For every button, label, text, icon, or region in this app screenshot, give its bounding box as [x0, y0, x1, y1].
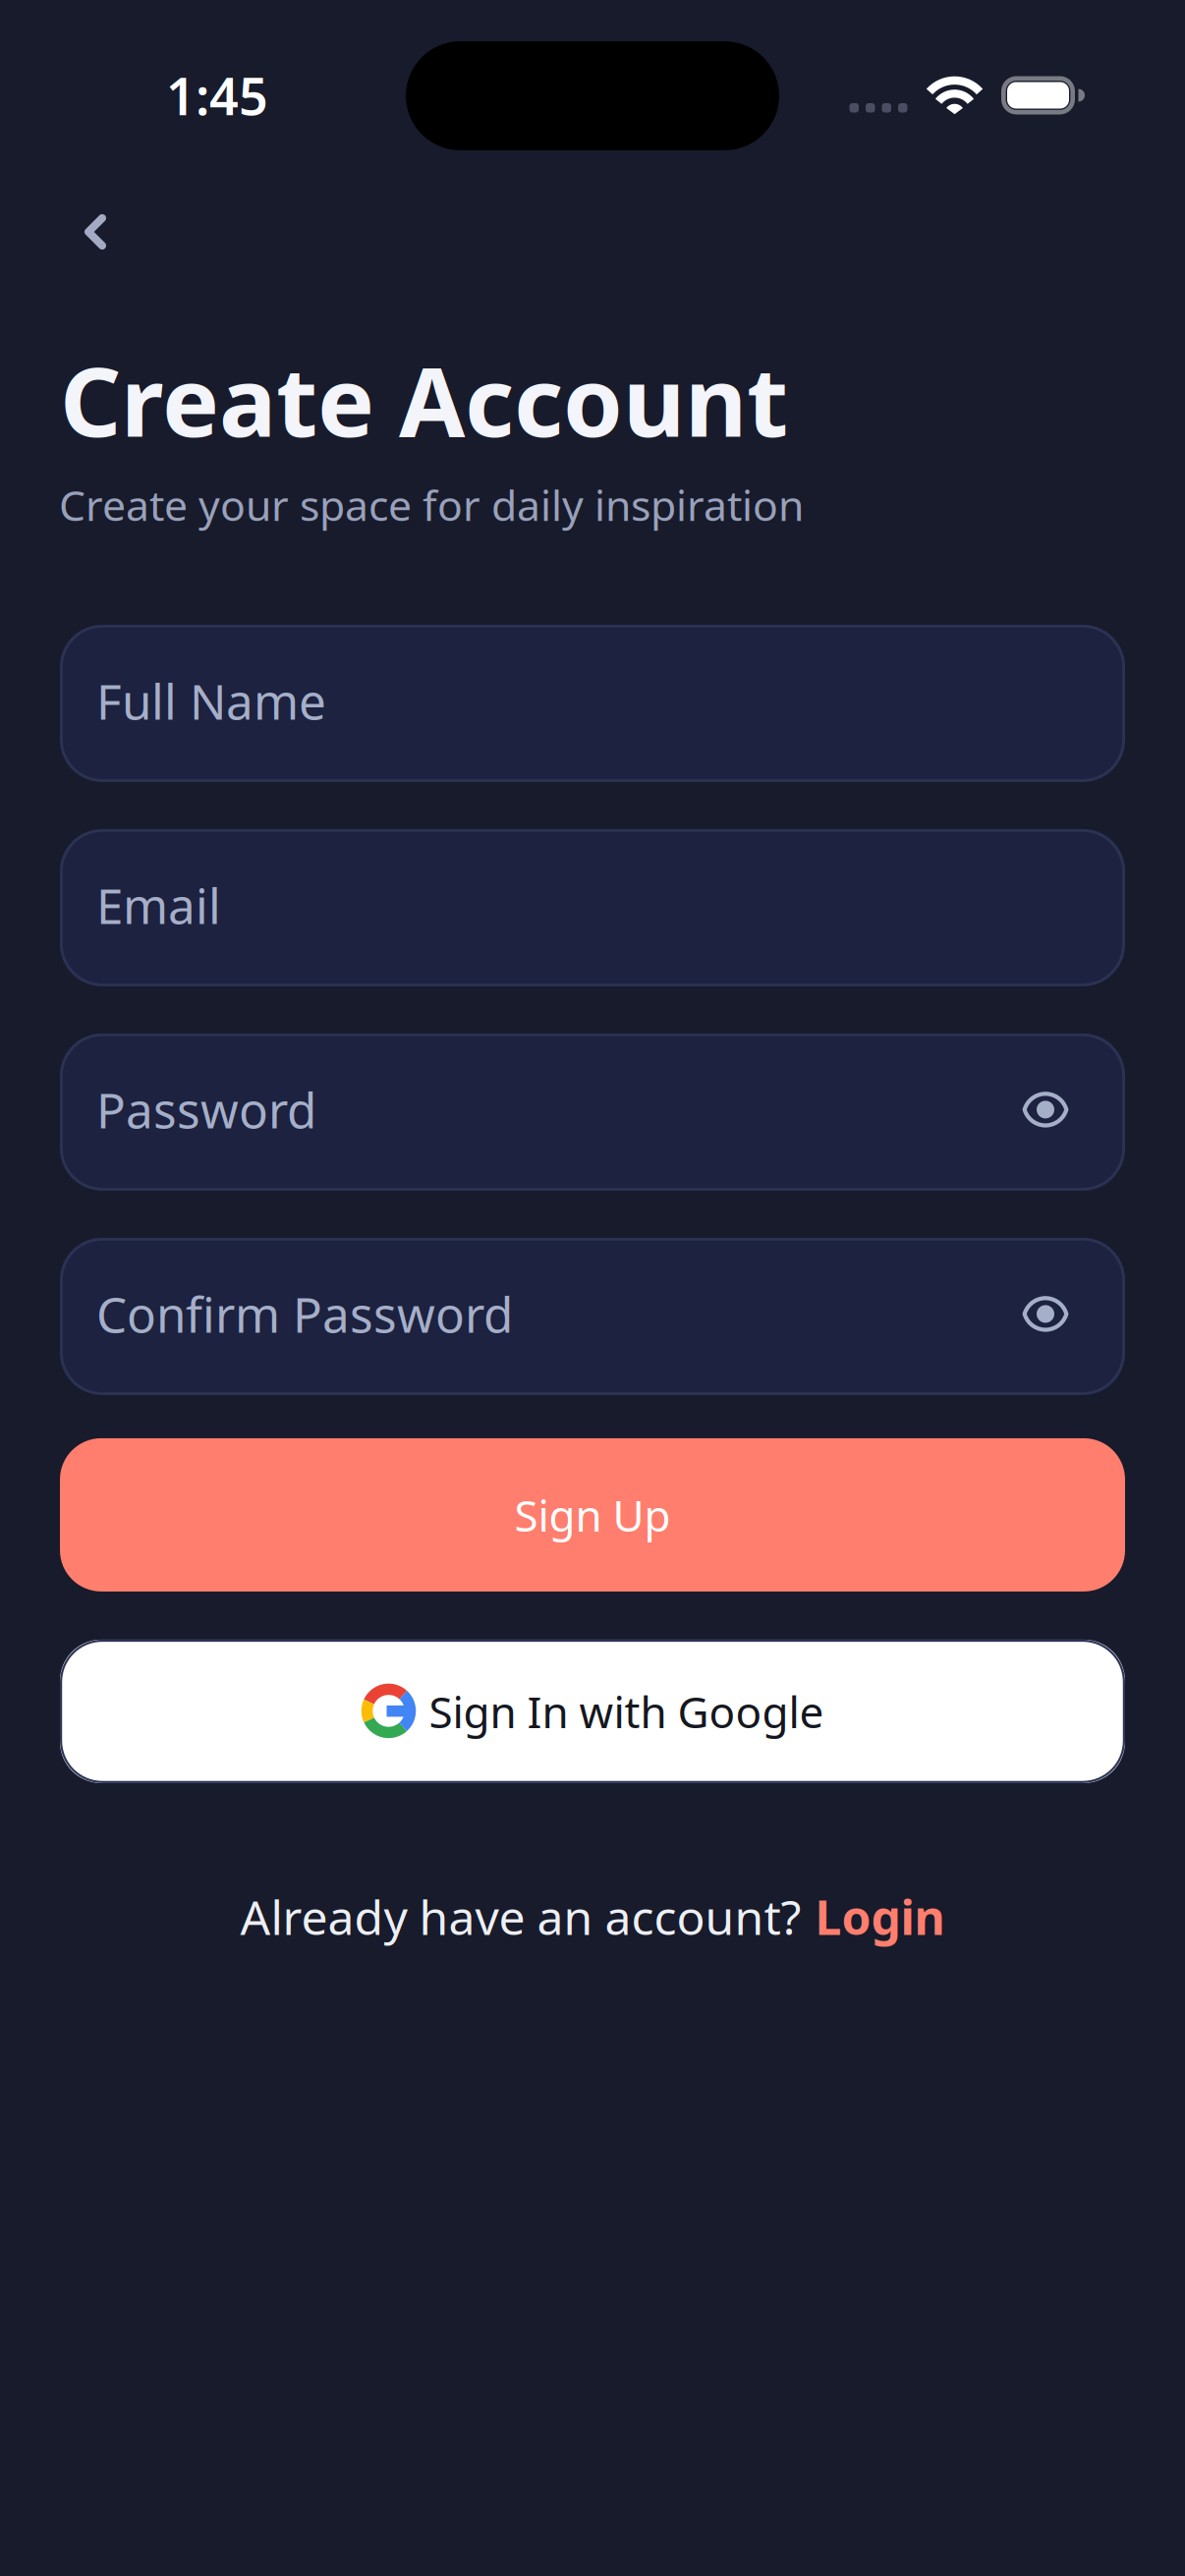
staticText: Full Name — [96, 669, 326, 733]
staticText: Confirm Password — [96, 1282, 513, 1346]
staticText: Already have an account? — [240, 1885, 801, 1948]
staticText: Password — [96, 1077, 316, 1142]
staticText: Create Account — [60, 336, 788, 463]
staticText: Sign In with Google — [429, 1683, 824, 1740]
button[interactable]: Show Confirm Password — [999, 1238, 1092, 1395]
staticText: Create your space for daily inspiration — [59, 477, 804, 532]
staticText: Email — [96, 873, 221, 937]
button[interactable]: Sign In with Google — [60, 1640, 1125, 1783]
button[interactable]: Sign Up — [60, 1438, 1125, 1591]
staticText: Sign Up — [514, 1486, 671, 1544]
button[interactable]: Back — [46, 183, 144, 281]
button[interactable]: Already have an account? — [60, 1882, 1125, 1951]
button[interactable]: Show Password — [999, 1033, 1092, 1191]
staticText: 1:45 — [166, 61, 268, 129]
staticText: Login — [815, 1885, 945, 1948]
